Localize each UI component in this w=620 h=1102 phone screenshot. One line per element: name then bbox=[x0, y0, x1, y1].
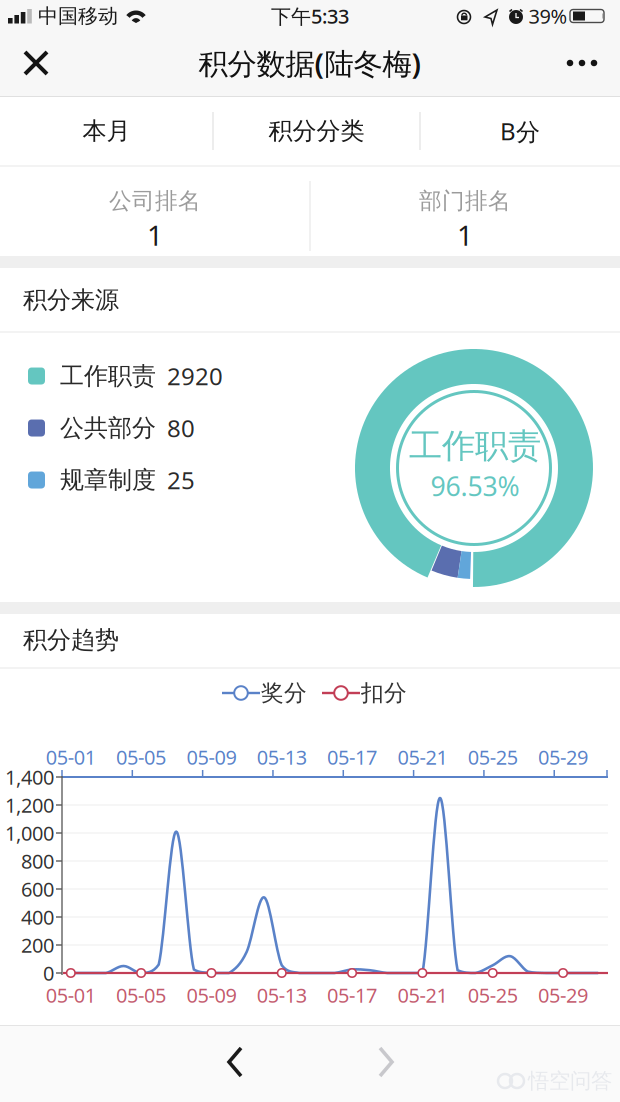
staticText: 05-29 bbox=[538, 982, 588, 1008]
staticText: 05-17 bbox=[327, 982, 377, 1008]
button[interactable]: 积分分类 bbox=[213, 96, 419, 165]
staticText: B分 bbox=[500, 115, 540, 147]
staticText: 部门排名 bbox=[419, 187, 511, 215]
staticText: 05-01 bbox=[46, 744, 96, 770]
button[interactable]: 本月 bbox=[0, 96, 212, 165]
staticText: 200 bbox=[21, 932, 54, 958]
staticText: 05-05 bbox=[116, 982, 166, 1008]
staticText: 600 bbox=[21, 876, 54, 902]
staticText: 05-01 bbox=[46, 982, 96, 1008]
staticText: 05-17 bbox=[327, 744, 377, 770]
staticText: 2920 bbox=[167, 360, 223, 392]
staticText: 公司排名 bbox=[109, 187, 201, 215]
staticText: 本月 bbox=[82, 116, 130, 146]
staticText: 05-25 bbox=[468, 982, 518, 1008]
staticText: 1,400 bbox=[5, 764, 54, 790]
staticText: 下午5:33 bbox=[271, 3, 349, 29]
staticText: 05-05 bbox=[116, 744, 166, 770]
staticText: 1 bbox=[457, 216, 473, 254]
staticText: 96.53% bbox=[430, 468, 519, 504]
staticText: 规章制度 bbox=[60, 465, 156, 495]
staticText: 80 bbox=[167, 412, 195, 444]
staticText: 25 bbox=[167, 464, 195, 496]
staticText: 400 bbox=[21, 904, 54, 930]
staticText: 1,200 bbox=[5, 792, 54, 818]
staticText: 积分来源 bbox=[23, 285, 119, 315]
button[interactable]: Close bbox=[15, 42, 57, 84]
staticText: 05-13 bbox=[257, 744, 307, 770]
staticText: 1 bbox=[147, 216, 163, 254]
staticText: 05-29 bbox=[538, 744, 588, 770]
staticText: 05-09 bbox=[186, 982, 236, 1008]
staticText: 奖分 bbox=[261, 679, 307, 707]
staticText: 扣分 bbox=[361, 679, 407, 707]
staticText: 0 bbox=[43, 960, 54, 986]
staticText: 800 bbox=[21, 848, 54, 874]
staticText: 积分分类 bbox=[268, 116, 364, 146]
staticText: 工作职责 bbox=[60, 361, 156, 391]
staticText: 1,000 bbox=[5, 820, 54, 846]
staticText: 05-21 bbox=[397, 982, 447, 1008]
staticText: 39% bbox=[528, 3, 567, 29]
staticText: 悟空问答 bbox=[528, 1068, 612, 1094]
staticText: 工作职责 bbox=[409, 425, 541, 466]
staticText: 05-13 bbox=[257, 982, 307, 1008]
staticText: 积分数据(陆冬梅) bbox=[198, 43, 421, 82]
staticText: 中国移动 bbox=[38, 4, 118, 28]
button[interactable]: More bbox=[558, 42, 606, 84]
button[interactable]: B分 bbox=[420, 96, 619, 165]
button[interactable]: Back bbox=[214, 1040, 258, 1084]
staticText: 积分趋势 bbox=[23, 625, 119, 655]
staticText: 05-21 bbox=[397, 744, 447, 770]
staticText: 05-25 bbox=[468, 744, 518, 770]
staticText: 05-09 bbox=[186, 744, 236, 770]
button[interactable]: Forward bbox=[363, 1040, 407, 1084]
staticText: 公共部分 bbox=[60, 413, 156, 443]
